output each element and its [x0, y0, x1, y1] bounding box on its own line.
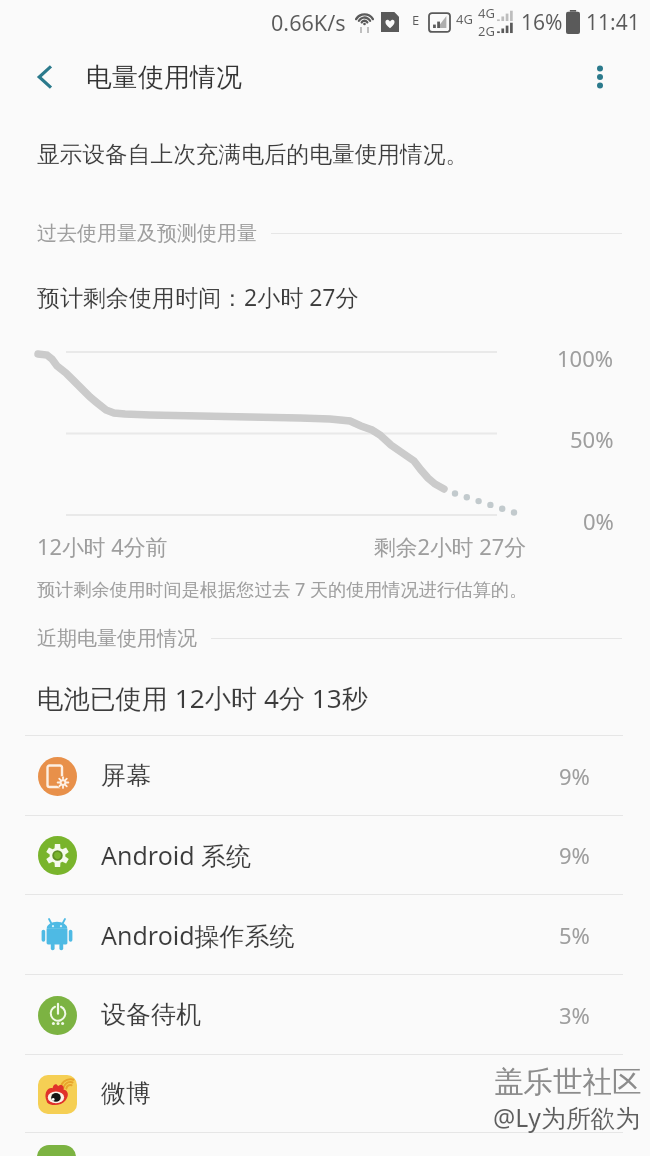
staticText: @Ly为所欲为: [493, 1100, 641, 1134]
staticText: 9%: [559, 761, 590, 791]
staticText: 0.66K/s: [271, 8, 346, 37]
staticText: 4G: [456, 10, 473, 28]
staticText: 11:41: [586, 8, 640, 37]
staticText: Android 系统: [101, 838, 252, 872]
staticText: 微博: [101, 1078, 151, 1109]
staticText: Android操作系统: [101, 918, 295, 952]
staticText: 电量使用情况: [86, 61, 242, 94]
button[interactable]: 屏幕: [0, 736, 650, 815]
staticText: 0%: [583, 506, 614, 536]
staticText: 电池已使用 12小时 4分 13秒: [37, 680, 369, 716]
staticText: 5%: [559, 920, 590, 950]
staticText: 盖乐世社区: [494, 1064, 642, 1101]
staticText: 4G: [478, 4, 495, 22]
staticText: 设备待机: [101, 999, 201, 1030]
staticText: 过去使用量及预测使用量: [37, 221, 257, 246]
button[interactable]: Back: [22, 54, 68, 100]
button[interactable]: Android操作系统: [0, 895, 650, 974]
staticText: 近期电量使用情况: [37, 626, 197, 651]
button[interactable]: More options: [577, 54, 623, 100]
button[interactable]: 微博: [0, 1055, 650, 1132]
staticText: 2G: [478, 22, 495, 40]
button[interactable]: Android 系统: [0, 816, 650, 894]
staticText: 剩余2小时 27分: [374, 532, 527, 562]
staticText: 50%: [570, 424, 614, 454]
staticText: E: [412, 11, 420, 29]
staticText: 9%: [559, 840, 590, 870]
staticText: 预计剩余使用时间是根据您过去 7 天的使用情况进行估算的。: [37, 577, 528, 602]
staticText: 预计剩余使用时间：2小时 27分: [37, 281, 359, 312]
staticText: 屏幕: [101, 760, 151, 791]
staticText: 12小时 4分前: [37, 532, 168, 562]
staticText: 100%: [557, 343, 614, 373]
staticText: 16%: [521, 8, 563, 37]
staticText: 显示设备自上次充满电后的电量使用情况。: [37, 140, 469, 169]
staticText: 3%: [559, 1000, 590, 1030]
button[interactable]: 设备待机: [0, 975, 650, 1054]
